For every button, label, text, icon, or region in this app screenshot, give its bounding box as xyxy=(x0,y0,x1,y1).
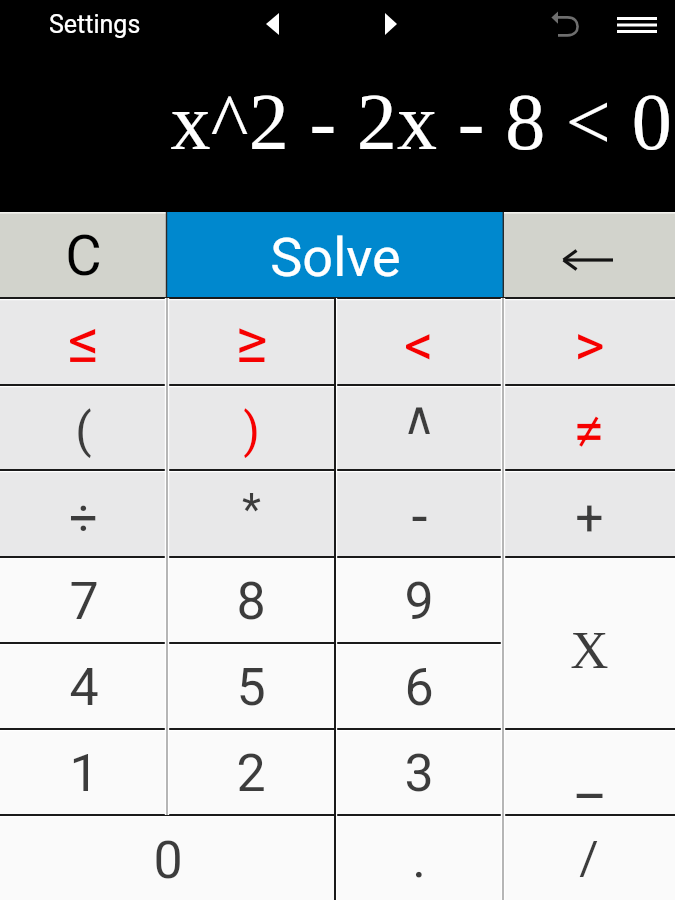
staticText: 4 xyxy=(69,657,99,718)
staticText: - xyxy=(411,482,428,550)
button[interactable]: 0 xyxy=(0,815,335,900)
button[interactable]: _ xyxy=(503,729,675,815)
staticText: 5 xyxy=(236,657,266,718)
button[interactable]: / xyxy=(503,815,675,900)
button[interactable]: 4 xyxy=(0,643,167,729)
button[interactable]: ≥ xyxy=(167,298,335,385)
staticText: ÷ xyxy=(69,489,98,548)
button[interactable]: Menu xyxy=(613,1,661,49)
button[interactable]: 7 xyxy=(0,557,167,643)
button[interactable]: Move cursor right xyxy=(369,2,413,46)
staticText: ≤ xyxy=(68,304,100,377)
button[interactable]: ÷ xyxy=(0,470,167,557)
staticText: * xyxy=(242,484,261,536)
button[interactable]: < xyxy=(335,298,503,385)
staticText: Solve xyxy=(270,226,401,289)
button[interactable]: . xyxy=(335,815,503,900)
button[interactable]: 3 xyxy=(335,729,503,815)
button[interactable]: Settings xyxy=(35,1,155,47)
button[interactable]: > xyxy=(503,298,675,385)
staticText: 7 xyxy=(69,571,99,632)
button[interactable]: ∧ xyxy=(335,385,503,470)
staticText: > xyxy=(574,311,605,379)
button[interactable]: 9 xyxy=(335,557,503,643)
button[interactable]: 8 xyxy=(167,557,335,643)
button[interactable]: 2 xyxy=(167,729,335,815)
button[interactable]: X xyxy=(503,557,675,729)
staticText: x^2 - 2x - 8 < 0 xyxy=(170,78,672,167)
staticText: X xyxy=(570,621,609,680)
staticText: + xyxy=(575,489,604,548)
staticText: ( xyxy=(75,402,92,458)
staticText: _ xyxy=(576,740,603,808)
staticText: ) xyxy=(243,402,260,458)
button[interactable]: - xyxy=(335,470,503,557)
staticText: Settings xyxy=(49,10,141,39)
button[interactable]: + xyxy=(503,470,675,557)
staticText: 2 xyxy=(236,743,266,804)
button[interactable]: Solve xyxy=(167,212,503,298)
staticText: ≠ xyxy=(573,398,605,465)
staticText: 9 xyxy=(404,571,434,632)
button[interactable]: Backspace xyxy=(503,212,675,298)
staticText: C xyxy=(65,223,102,289)
button[interactable]: ≤ xyxy=(0,298,167,385)
staticText: ∧ xyxy=(402,391,436,445)
button[interactable]: ≠ xyxy=(503,385,675,470)
staticText: 6 xyxy=(404,657,434,718)
button[interactable]: * xyxy=(167,470,335,557)
button[interactable]: Move cursor left xyxy=(250,2,294,46)
staticText: 8 xyxy=(236,571,266,632)
button[interactable]: C xyxy=(0,212,167,298)
button[interactable]: Undo xyxy=(540,0,588,47)
button[interactable]: 5 xyxy=(167,643,335,729)
button[interactable]: 1 xyxy=(0,729,167,815)
staticText: . xyxy=(412,829,426,890)
staticText: ≥ xyxy=(235,304,268,377)
button[interactable]: 6 xyxy=(335,643,503,729)
button[interactable]: ( xyxy=(0,385,167,470)
staticText: 3 xyxy=(404,743,434,804)
staticText: 1 xyxy=(69,743,99,804)
staticText: 0 xyxy=(153,830,183,891)
staticText: < xyxy=(404,311,434,379)
staticText: / xyxy=(579,830,599,885)
button[interactable]: ) xyxy=(167,385,335,470)
